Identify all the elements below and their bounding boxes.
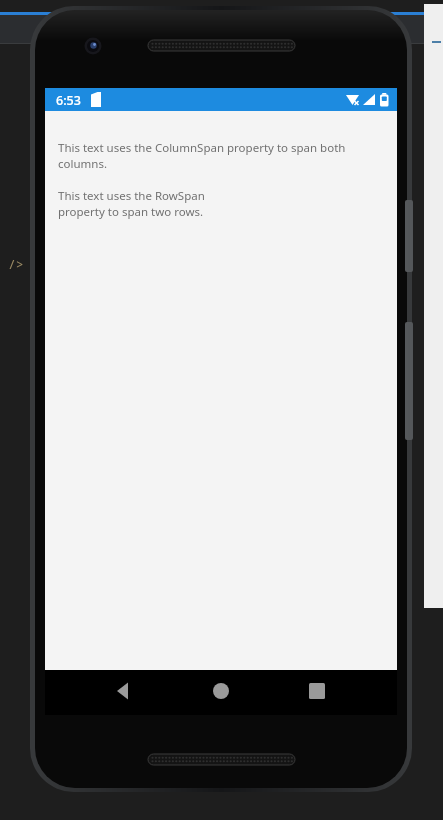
button[interactable]: Home xyxy=(197,670,245,715)
staticText: 6:53 xyxy=(56,92,81,109)
button[interactable]: This text uses the ColumnSpan property t… xyxy=(58,140,358,174)
button[interactable]: Back xyxy=(98,670,146,715)
button[interactable]: Recent apps xyxy=(293,670,341,715)
staticText: This text uses the RowSpan property to s… xyxy=(58,188,205,219)
button[interactable]: This text uses the RowSpan property to s… xyxy=(58,188,358,222)
staticText: /> xyxy=(8,255,24,273)
staticText: This text uses the ColumnSpan property t… xyxy=(58,140,346,171)
